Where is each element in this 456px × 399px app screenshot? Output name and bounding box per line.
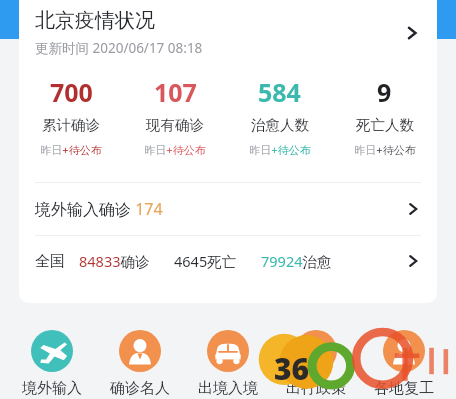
staticText: 36	[274, 348, 310, 389]
button[interactable]: 107	[123, 75, 227, 157]
staticText: 更新时间 2020/06/17 08:18	[35, 39, 203, 57]
button[interactable]: 境外输入确诊 174	[19, 183, 437, 235]
staticText: 各地复工	[374, 379, 434, 398]
button[interactable]: 584	[227, 75, 332, 157]
staticText: 境外输入确诊 174	[35, 198, 163, 220]
staticText: 107	[154, 75, 197, 109]
staticText: 死亡人数	[356, 116, 414, 134]
staticText: 79924治愈	[261, 251, 332, 271]
staticText: 治愈人数	[251, 116, 309, 134]
button[interactable]: 9	[332, 75, 437, 157]
button[interactable]: 各地复工	[362, 330, 446, 398]
staticText: 700	[50, 75, 93, 109]
staticText: 昨日+待公布	[40, 142, 102, 157]
staticText: 现有确诊	[146, 116, 204, 134]
other: 查看更多	[403, 199, 423, 219]
staticText: 境外输入	[22, 379, 82, 398]
staticText: 昨日+待公布	[354, 142, 416, 157]
staticText: 84833确诊	[79, 251, 150, 271]
staticText: 北京疫情状况	[35, 8, 155, 33]
button[interactable]: 出行政策	[274, 330, 358, 398]
staticText: 全国	[35, 252, 65, 271]
staticText: 昨日+待公布	[249, 142, 311, 157]
button[interactable]: 境外输入	[10, 330, 94, 398]
other: 查看更多	[403, 251, 423, 271]
button[interactable]: 全国	[19, 236, 437, 286]
other: 查看更多	[401, 22, 423, 44]
staticText: 昨日+待公布	[144, 142, 206, 157]
staticText: 确诊名人	[110, 379, 170, 398]
staticText: 584	[258, 75, 301, 109]
button[interactable]: 北京疫情状况	[19, 0, 437, 57]
staticText: 出境入境	[198, 379, 258, 398]
staticText: 9	[377, 75, 392, 109]
staticText: 累计确诊	[42, 116, 100, 134]
button[interactable]: 出境入境	[186, 330, 270, 398]
button[interactable]: 确诊名人	[98, 330, 182, 398]
staticText: 出行政策	[286, 379, 346, 398]
staticText: 4645死亡	[174, 251, 237, 271]
button[interactable]: 700	[19, 75, 123, 157]
